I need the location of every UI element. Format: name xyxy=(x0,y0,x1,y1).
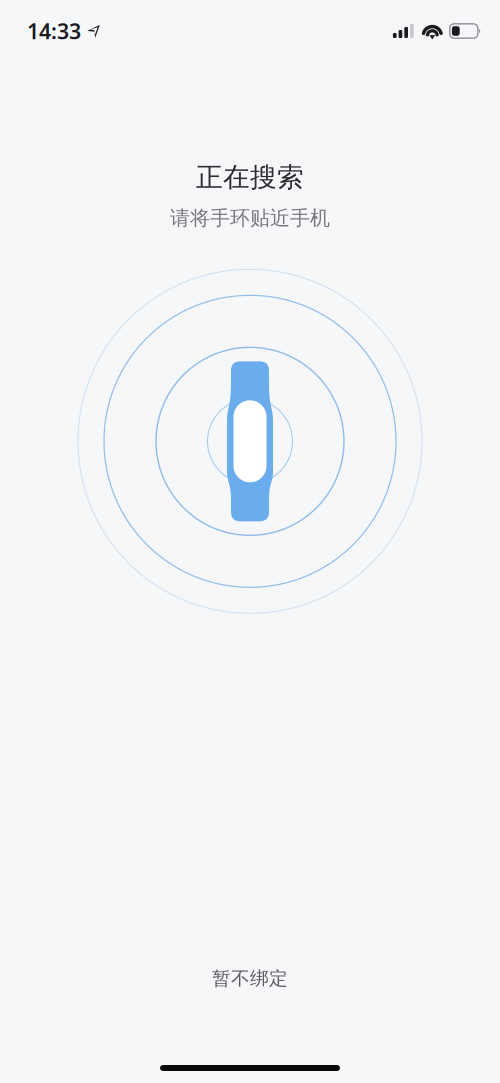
staticText: 暂不绑定 xyxy=(212,967,288,990)
button[interactable]: 暂不绑定 xyxy=(0,954,500,1003)
staticText: 14:33 xyxy=(27,17,81,45)
staticText: 请将手环贴近手机 xyxy=(170,206,330,230)
staticText: 正在搜索 xyxy=(196,161,304,194)
